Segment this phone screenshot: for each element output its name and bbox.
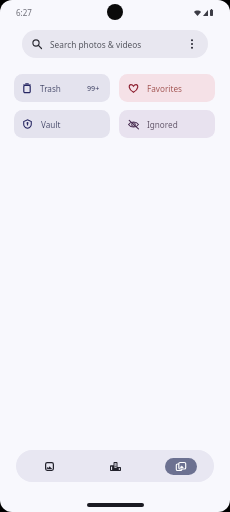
button[interactable]: Collections <box>99 458 131 475</box>
staticText: 99+ <box>87 83 100 93</box>
button[interactable]: Vault <box>14 110 110 138</box>
staticText: Vault <box>41 119 61 130</box>
button[interactable]: Ignored <box>119 110 215 138</box>
button[interactable]: Favorites <box>119 74 215 102</box>
staticText: 6:27 <box>16 7 32 18</box>
button[interactable]: Photos <box>33 458 65 475</box>
staticText: Search photos & videos <box>50 39 142 50</box>
staticText: Favorites <box>147 83 182 94</box>
button[interactable]: Trash <box>14 74 110 102</box>
button[interactable]: Library <box>165 458 197 475</box>
staticText: Trash <box>40 83 61 94</box>
staticText: Ignored <box>147 119 178 130</box>
button[interactable]: Search photos & videos <box>22 30 208 58</box>
